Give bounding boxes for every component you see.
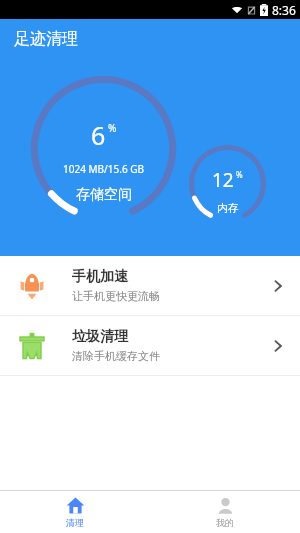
staticText: 清除手机缓存文件	[72, 349, 160, 363]
staticText: 1024 MB/15.6 GB	[63, 162, 144, 176]
staticText: 让手机更快更流畅	[72, 289, 160, 303]
staticText: 12	[212, 167, 234, 193]
staticText: 8:36	[272, 2, 296, 18]
button[interactable]: 手机加速	[0, 256, 300, 315]
staticText: 清理	[66, 517, 84, 528]
staticText: 足迹清理	[14, 29, 78, 49]
button[interactable]: 垃圾清理	[0, 316, 300, 375]
staticText: 手机加速	[72, 268, 128, 286]
staticText: %	[236, 169, 243, 180]
staticText: 垃圾清理	[72, 328, 128, 346]
button[interactable]: 清理	[0, 491, 150, 533]
staticText: 我的	[216, 517, 234, 528]
staticText: 存储空间	[76, 186, 132, 204]
staticText: %	[108, 121, 117, 135]
button[interactable]: 我的	[150, 491, 300, 533]
staticText: 内存	[217, 201, 239, 215]
staticText: 6	[91, 118, 106, 152]
